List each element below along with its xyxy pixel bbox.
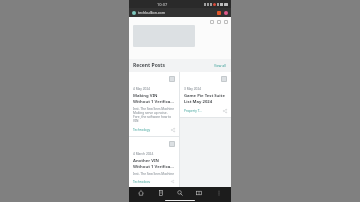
button[interactable]: Action 1 [217, 20, 221, 24]
staticText: Inst. The Sew Sees Machine [133, 172, 175, 176]
staticText: Technology [133, 180, 151, 183]
button[interactable]: Home [134, 187, 148, 198]
staticText: Property Test Release [184, 109, 203, 113]
button[interactable]: Share [170, 180, 175, 183]
staticText: Making VIN Without 1 Verification [133, 93, 175, 104]
button[interactable]: Search [173, 187, 187, 198]
button[interactable]: Technology [133, 128, 151, 132]
button[interactable]: Share [222, 108, 227, 113]
button[interactable]: Site badge [216, 10, 221, 15]
staticText: 4 March 2024 [133, 152, 154, 156]
button[interactable]: 4 March 2024 [129, 137, 179, 187]
button[interactable]: Tabs [192, 187, 206, 198]
staticText: Inst. The Sew Sees Machine Making serve … [133, 107, 175, 123]
button[interactable]: Action 2 [224, 20, 228, 24]
staticText: 4 May 2024 [133, 87, 151, 91]
staticText: Recent Posts [133, 62, 165, 69]
button[interactable]: Profile [223, 10, 228, 15]
button[interactable]: 4 May 2024 [129, 72, 179, 136]
staticText: 3 May 2024 [184, 87, 202, 91]
staticText: View all [214, 63, 226, 68]
staticText: Another VIN Without 1 Verification [133, 158, 175, 169]
button[interactable]: Bookmarks [154, 187, 168, 198]
button[interactable]: Action 0 [210, 20, 214, 24]
button[interactable]: 3 May 2024 [180, 72, 231, 117]
button[interactable]: More [212, 187, 226, 198]
staticText: Game Pie Test Suite List May 2024 [184, 93, 227, 104]
button[interactable]: Property Test Release [184, 109, 203, 113]
staticText: techbullion.com [138, 10, 216, 15]
button[interactable]: View all [213, 62, 227, 69]
button[interactable]: Share [170, 127, 175, 132]
button[interactable]: Technology [133, 180, 151, 183]
staticText: 10:07 [157, 2, 168, 7]
staticText: Technology [133, 128, 151, 132]
